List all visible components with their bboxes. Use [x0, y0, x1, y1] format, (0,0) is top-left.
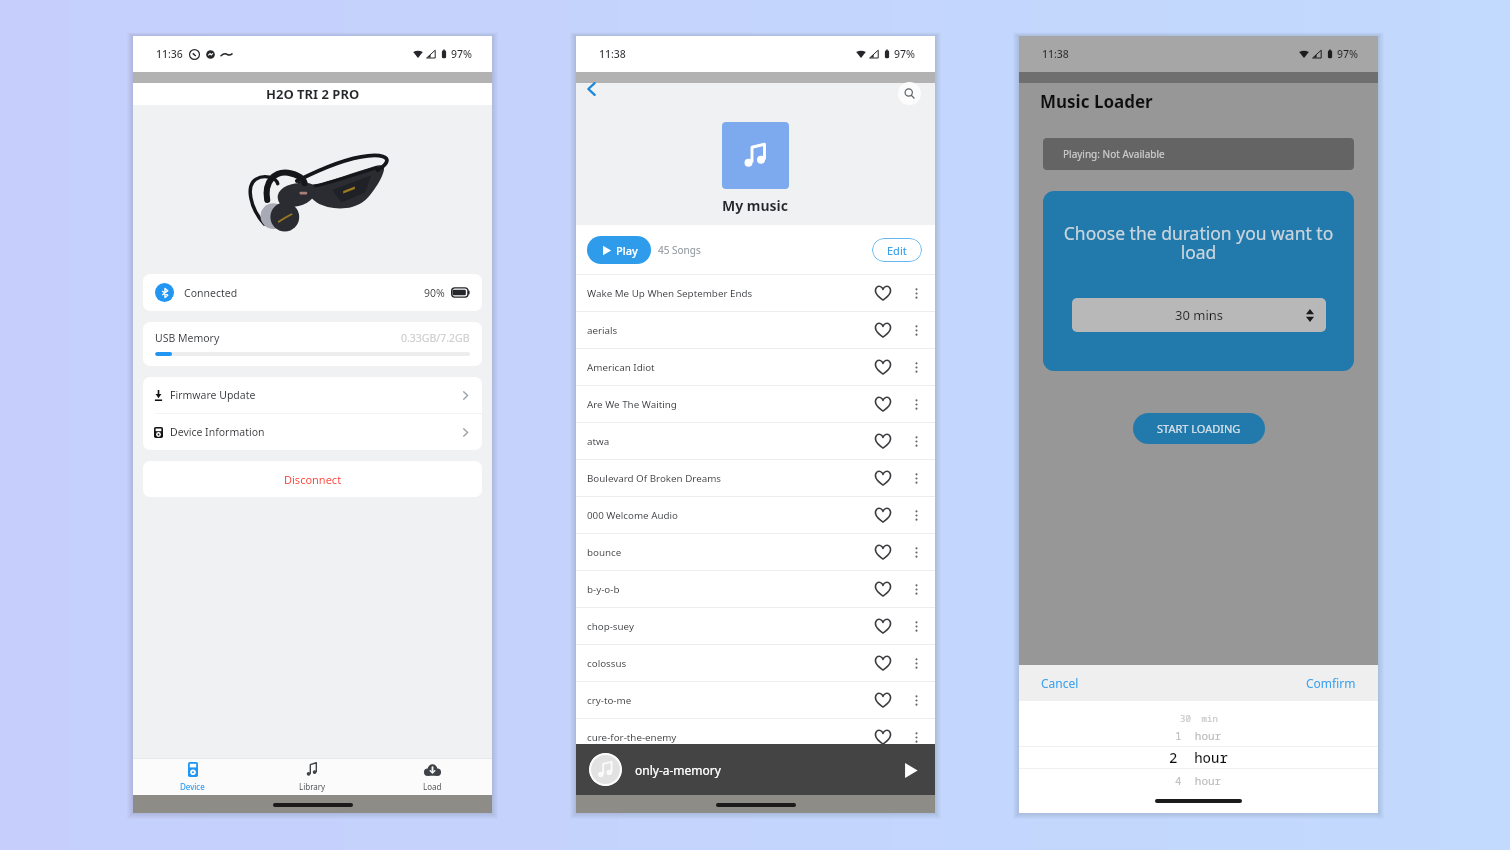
button[interactable]: Wake Me Up When September Ends	[576, 275, 935, 311]
staticText: Disconnect	[284, 472, 342, 487]
button[interactable]: More options	[908, 507, 924, 523]
button[interactable]: aerials	[576, 312, 935, 348]
staticText: 0.33GB/7.2GB	[401, 331, 470, 345]
staticText: chop-suey	[587, 620, 634, 633]
button[interactable]: 30 mins	[1072, 298, 1326, 332]
staticText: 11:38	[599, 47, 626, 61]
button[interactable]: Favourite	[872, 504, 894, 526]
button[interactable]: Are We The Waiting	[576, 386, 935, 422]
button[interactable]: Favourite	[872, 541, 894, 563]
button[interactable]: Favourite	[872, 319, 894, 341]
staticText: Are We The Waiting	[587, 398, 677, 411]
button[interactable]: American Idiot	[576, 349, 935, 385]
button[interactable]: cure-for-the-enemy	[576, 719, 935, 755]
staticText: 000 Welcome Audio	[587, 509, 678, 522]
staticText: 4 hour	[1175, 773, 1222, 788]
button[interactable]: Favourite	[872, 578, 894, 600]
staticText: 11:36	[156, 47, 183, 61]
staticText: Device Information	[170, 425, 265, 439]
button[interactable]: b-y-o-b	[576, 571, 935, 607]
staticText: only-a-memory	[635, 762, 721, 778]
staticText: Cancel	[1041, 675, 1079, 691]
button[interactable]: More options	[908, 470, 924, 486]
staticText: 45 Songs	[658, 243, 701, 257]
button[interactable]: cry-to-me	[576, 682, 935, 718]
staticText: 97%	[451, 47, 472, 61]
staticText: Firmware Update	[170, 388, 256, 402]
button[interactable]: chop-suey	[576, 608, 935, 644]
staticText: cry-to-me	[587, 694, 632, 707]
button[interactable]: Cancel	[1041, 675, 1079, 691]
staticText: Play	[616, 243, 638, 258]
button[interactable]: Play	[899, 759, 921, 781]
staticText: 97%	[1337, 47, 1358, 61]
button[interactable]: More options	[908, 692, 924, 708]
button[interactable]: Favourite	[872, 282, 894, 304]
button[interactable]: Device Information	[143, 414, 482, 450]
button[interactable]: Favourite	[872, 393, 894, 415]
button[interactable]: More options	[908, 396, 924, 412]
staticText: USB Memory	[155, 331, 220, 345]
staticText: bounce	[587, 546, 622, 559]
staticText: Choose the duration you want to load	[1043, 221, 1354, 264]
staticText: colossus	[587, 657, 627, 670]
staticText: Connected	[184, 286, 238, 300]
staticText: Device	[180, 781, 205, 792]
staticText: My music	[722, 196, 789, 215]
button[interactable]: Library	[252, 759, 372, 795]
staticText: 97%	[894, 47, 915, 61]
button[interactable]: More options	[908, 618, 924, 634]
button[interactable]: bounce	[576, 534, 935, 570]
staticText: START LOADING	[1157, 421, 1241, 436]
button[interactable]: Connected	[143, 274, 482, 311]
staticText: Library	[299, 781, 326, 792]
staticText: 11:38	[1042, 47, 1069, 61]
button[interactable]: Comfirm	[1306, 675, 1356, 691]
staticText: 2 hour	[1169, 748, 1228, 767]
button[interactable]: More options	[908, 285, 924, 301]
button[interactable]: Boulevard Of Broken Dreams	[576, 460, 935, 496]
button[interactable]: Device	[133, 759, 252, 795]
button[interactable]: Load	[372, 759, 492, 795]
staticText: atwa	[587, 435, 610, 448]
staticText: H2O TRI 2 PRO	[266, 85, 360, 103]
staticText: American Idiot	[587, 361, 655, 374]
button[interactable]: More options	[908, 359, 924, 375]
staticText: 30 mins	[1175, 306, 1224, 324]
button[interactable]: atwa	[576, 423, 935, 459]
staticText: Music Loader	[1040, 90, 1153, 113]
button[interactable]: colossus	[576, 645, 935, 681]
staticText: 30 min	[1180, 712, 1218, 724]
button[interactable]: Back	[580, 78, 602, 100]
button[interactable]: Edit	[872, 238, 922, 262]
button[interactable]: Favourite	[872, 689, 894, 711]
staticText: Playing: Not Available	[1063, 147, 1165, 161]
button[interactable]: only-a-memory	[576, 744, 935, 795]
staticText: 1 hour	[1175, 728, 1222, 743]
button[interactable]: More options	[908, 655, 924, 671]
button[interactable]: Favourite	[872, 652, 894, 674]
button[interactable]: 000 Welcome Audio	[576, 497, 935, 533]
button[interactable]: Favourite	[872, 430, 894, 452]
button[interactable]: Favourite	[872, 467, 894, 489]
button[interactable]: More options	[908, 322, 924, 338]
button[interactable]: Favourite	[872, 356, 894, 378]
staticText: Boulevard Of Broken Dreams	[587, 472, 722, 485]
button[interactable]: Play	[587, 236, 651, 264]
staticText: Comfirm	[1306, 675, 1356, 691]
staticText: 90%	[424, 286, 445, 300]
button[interactable]: More options	[908, 581, 924, 597]
button[interactable]: Disconnect	[143, 461, 482, 497]
button[interactable]: Firmware Update	[143, 377, 482, 413]
button[interactable]: Favourite	[872, 615, 894, 637]
staticText: cure-for-the-enemy	[587, 731, 677, 744]
button[interactable]: Search	[898, 82, 921, 105]
button[interactable]: More options	[908, 729, 924, 745]
button[interactable]: More options	[908, 433, 924, 449]
staticText: Edit	[887, 243, 907, 258]
button[interactable]: More options	[908, 544, 924, 560]
button[interactable]: Favourite	[872, 726, 894, 748]
staticText: Wake Me Up When September Ends	[587, 287, 753, 300]
staticText: Load	[423, 781, 442, 792]
button[interactable]: START LOADING	[1133, 413, 1265, 444]
